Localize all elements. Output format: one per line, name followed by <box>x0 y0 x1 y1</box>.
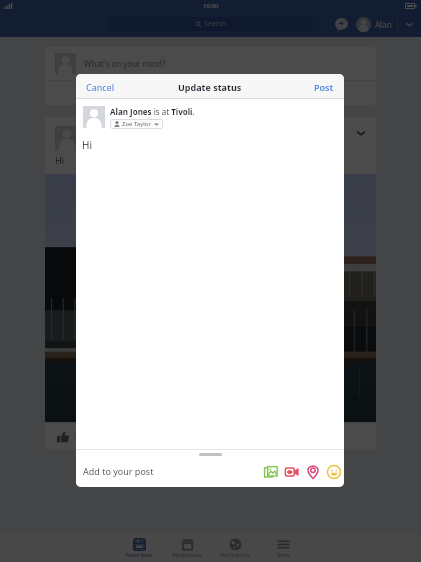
button[interactable]: News Feed <box>115 534 163 562</box>
button[interactable]: Alan <box>356 17 392 32</box>
staticText: Cancel <box>86 81 115 93</box>
button[interactable]: Post options <box>354 126 368 140</box>
button[interactable]: More <box>259 534 307 562</box>
staticText: Alan Jones is at Tivoli. <box>110 106 195 117</box>
button[interactable]: Feeling <box>323 461 344 482</box>
button[interactable]: Add photo <box>260 461 281 482</box>
button[interactable]: Search <box>108 17 313 31</box>
staticText: What's on your mind? <box>84 58 166 69</box>
button[interactable]: Cancel <box>76 74 125 99</box>
staticText: Post <box>314 81 334 93</box>
button[interactable]: Messenger <box>334 17 349 32</box>
staticText: Hi <box>82 138 92 152</box>
button[interactable]: Zoe Taylor <box>110 119 163 129</box>
staticText: Update status <box>178 81 242 93</box>
button[interactable]: Account menu <box>403 18 416 31</box>
button[interactable]: Marketplace <box>163 534 211 562</box>
button[interactable]: Post <box>304 74 344 99</box>
staticText: 10:00 <box>203 2 219 10</box>
staticText: Search <box>204 19 227 29</box>
staticText: Zoe Taylor <box>122 120 151 128</box>
button[interactable]: Go live <box>281 461 302 482</box>
button[interactable]: Notifications <box>211 534 259 562</box>
staticText: Alan <box>375 19 392 30</box>
staticText: More <box>277 552 290 559</box>
staticText: Like <box>75 431 92 442</box>
button[interactable]: Check in <box>302 461 323 482</box>
staticText: Hi <box>55 154 64 166</box>
staticText: Add to your post <box>83 465 154 477</box>
staticText: News Feed <box>126 552 152 559</box>
staticText: Notifications <box>220 552 250 559</box>
staticText: Marketplace <box>172 552 202 559</box>
